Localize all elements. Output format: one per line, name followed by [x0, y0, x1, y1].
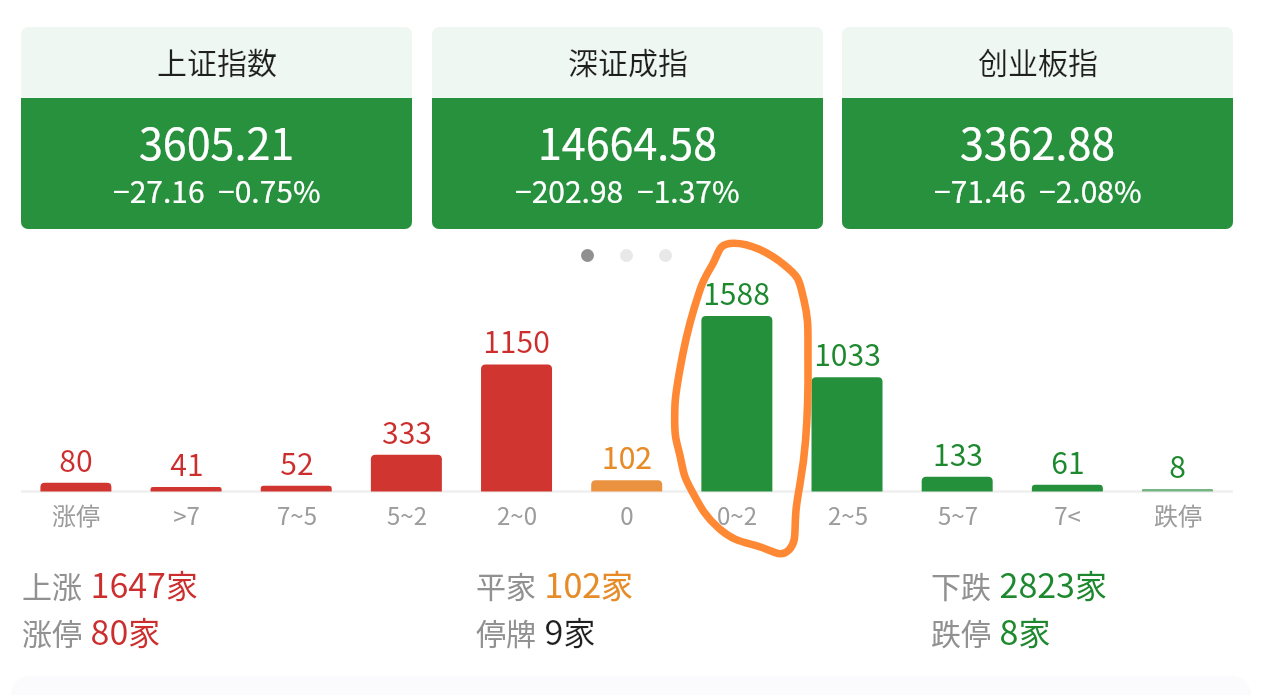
button[interactable]: 7<: [1017, 497, 1118, 532]
staticText: 跌停 8家: [931, 601, 1051, 656]
button[interactable]: Page indicator: [581, 249, 672, 262]
staticText: −2.08%: [1039, 168, 1142, 211]
staticText: >7: [173, 497, 200, 532]
staticText: 跌停: [1154, 497, 1202, 532]
button[interactable]: 涨停 80家: [22, 601, 161, 656]
staticText: 深证成指: [568, 39, 688, 82]
staticText: 14664.58: [538, 110, 718, 172]
staticText: 133: [933, 431, 983, 474]
staticText: 3605.21: [139, 110, 295, 172]
button[interactable]: 0: [576, 497, 677, 532]
button[interactable]: 0~2: [686, 497, 787, 532]
staticText: 2~5: [828, 497, 868, 532]
button[interactable]: 上涨 1647家: [22, 554, 198, 609]
button[interactable]: 5~2: [356, 497, 457, 532]
button[interactable]: 下跌 2823家: [931, 554, 1107, 609]
button[interactable]: 2~5: [797, 497, 898, 532]
staticText: 3362.88: [960, 110, 1116, 172]
button[interactable]: 2~0: [466, 497, 567, 532]
staticText: 上涨 1647家: [22, 554, 198, 609]
staticText: 0: [620, 497, 634, 532]
staticText: −71.46: [934, 168, 1026, 211]
button[interactable]: 上证指数: [21, 27, 412, 229]
staticText: 涨停: [52, 497, 100, 532]
button[interactable]: 7~5: [246, 497, 347, 532]
staticText: 涨停 80家: [22, 601, 161, 656]
staticText: 1150: [483, 318, 550, 361]
staticText: 平家 102家: [476, 554, 634, 609]
staticText: −27.16: [113, 168, 205, 211]
staticText: 5~7: [938, 497, 978, 532]
button[interactable]: >7: [136, 497, 237, 532]
staticText: −0.75%: [218, 168, 321, 211]
staticText: −202.98: [515, 168, 624, 211]
button[interactable]: 跌停: [1127, 497, 1228, 532]
staticText: 1588: [703, 270, 770, 313]
staticText: 7<: [1054, 497, 1081, 532]
button[interactable]: 创业板指: [842, 27, 1233, 229]
staticText: 2~0: [497, 497, 537, 532]
button[interactable]: 5~7: [907, 497, 1008, 532]
staticText: 5~2: [387, 497, 427, 532]
button[interactable]: 涨停: [25, 497, 126, 532]
button[interactable]: 深证成指: [432, 27, 823, 229]
staticText: 333: [382, 409, 432, 452]
button[interactable]: 平家 102家: [476, 554, 634, 609]
staticText: 80: [59, 437, 93, 480]
staticText: −1.37%: [637, 168, 740, 211]
staticText: 7~5: [277, 497, 317, 532]
staticText: 下跌 2823家: [931, 554, 1107, 609]
button[interactable]: 停牌 9家: [476, 601, 596, 656]
staticText: 41: [170, 441, 204, 484]
button[interactable]: 跌停 8家: [931, 601, 1051, 656]
staticText: 上证指数: [157, 39, 277, 82]
staticText: 0~2: [717, 497, 757, 532]
staticText: 52: [280, 440, 314, 483]
staticText: 1033: [814, 331, 881, 374]
staticText: 停牌 9家: [476, 601, 596, 656]
staticText: 61: [1051, 439, 1085, 482]
staticText: 8: [1169, 443, 1186, 486]
staticText: 创业板指: [978, 39, 1098, 82]
staticText: 102: [602, 434, 652, 477]
